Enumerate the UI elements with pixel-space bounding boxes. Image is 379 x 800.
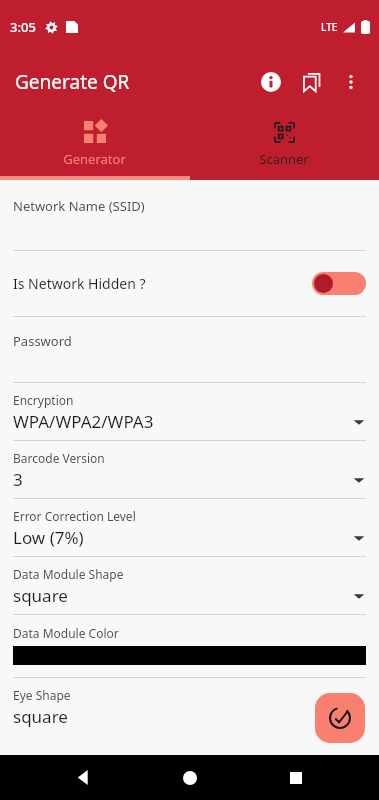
staticText: Is Network Hidden ? [13, 274, 312, 293]
staticText: 3:05 [10, 18, 36, 36]
button[interactable]: Recent apps [273, 755, 318, 800]
button[interactable]: Generate [315, 693, 365, 743]
button[interactable]: Info [251, 62, 291, 102]
staticText: Network Name (SSID) [13, 197, 145, 215]
staticText: Barcode Version [13, 450, 105, 466]
button[interactable]: Back [61, 755, 106, 800]
staticText: square [13, 705, 68, 728]
staticText: Scanner [259, 150, 309, 168]
button[interactable]: Barcode Version [0, 441, 379, 498]
button[interactable]: More options [331, 62, 371, 102]
button[interactable]: Password [0, 317, 379, 382]
button[interactable]: Eye Shape [0, 678, 379, 735]
staticText: Data Module Shape [13, 566, 124, 582]
staticText: Encryption [13, 392, 74, 408]
staticText: Generator [63, 150, 126, 168]
button[interactable]: Data Module Shape [0, 557, 379, 614]
staticText: Password [13, 332, 72, 350]
staticText: Data Module Color [13, 625, 119, 641]
staticText: LTE [321, 20, 338, 34]
button[interactable]: Network Name (SSID) [0, 180, 379, 250]
button[interactable]: Home [167, 755, 212, 800]
button[interactable]: Hidden network toggle [312, 272, 366, 295]
button[interactable]: Data Module Color [0, 615, 379, 677]
staticText: Error Correction Level [13, 508, 136, 524]
staticText: 3 [13, 468, 23, 491]
staticText: square [13, 584, 68, 607]
button[interactable]: Generator [0, 109, 189, 180]
staticText: Generate QR [15, 69, 130, 95]
button[interactable]: Encryption [0, 383, 379, 440]
button[interactable]: Error Correction Level [0, 499, 379, 556]
button[interactable]: Is Network Hidden ? [0, 251, 379, 316]
staticText: WPA/WPA2/WPA3 [13, 410, 154, 433]
button[interactable]: Saved codes [291, 62, 331, 102]
staticText: Eye Shape [13, 687, 71, 703]
button[interactable]: Scanner [189, 109, 379, 180]
staticText: Low (7%) [13, 526, 84, 549]
